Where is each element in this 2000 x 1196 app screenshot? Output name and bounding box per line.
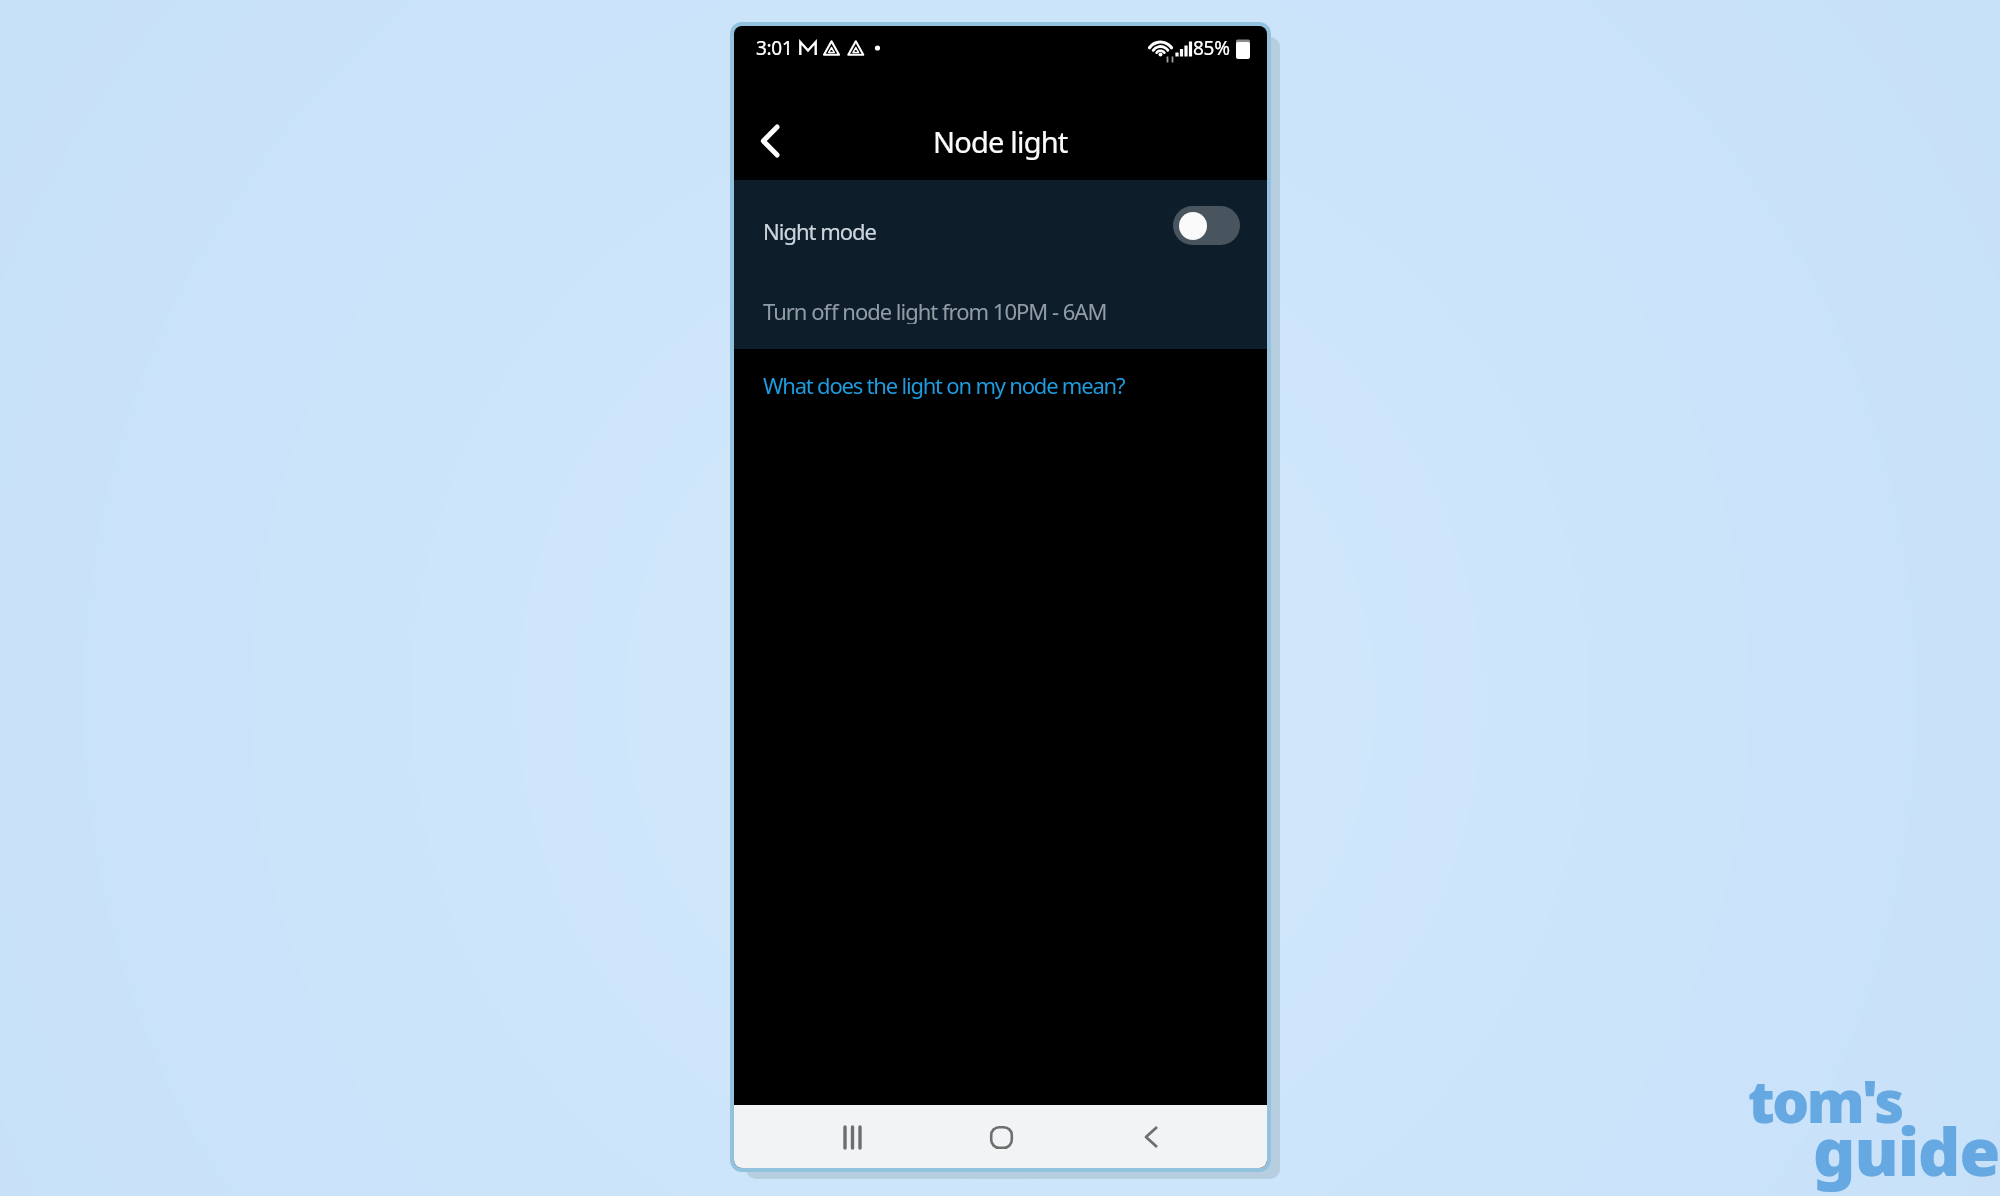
staticText: guide — [1813, 1105, 2000, 1195]
staticText: tom's — [1748, 1061, 1902, 1140]
button[interactable] — [1173, 206, 1240, 245]
button[interactable] — [831, 1115, 875, 1159]
staticText: What does the light on my node mean? — [763, 370, 1125, 400]
button[interactable]: What does the light on my node mean? — [763, 370, 1125, 400]
staticText: 3:01 — [756, 35, 793, 61]
button[interactable] — [748, 119, 792, 163]
button[interactable] — [1129, 1115, 1173, 1159]
staticText: 85% — [1193, 35, 1230, 61]
button[interactable] — [979, 1115, 1023, 1159]
button[interactable]: Night mode — [734, 206, 1267, 256]
staticText: Night mode — [763, 216, 877, 246]
staticText: Turn off node light from 10PM - 6AM — [763, 296, 1107, 324]
staticText: Node light — [933, 122, 1068, 161]
